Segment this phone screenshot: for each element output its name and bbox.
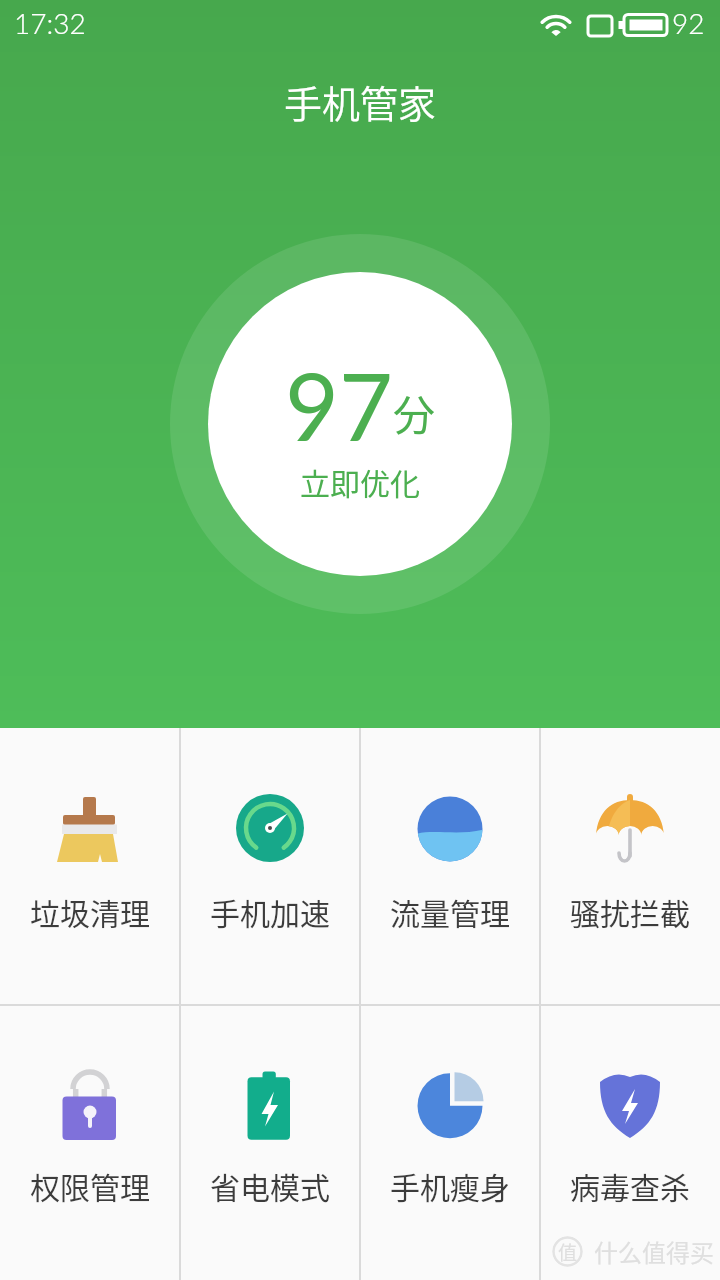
button[interactable]: 垃圾清理 <box>0 728 180 1006</box>
staticText: 92 <box>672 6 705 40</box>
staticText: 流量管理 <box>390 890 510 933</box>
staticText: 垃圾清理 <box>30 890 150 933</box>
staticText: 值 <box>558 1238 578 1266</box>
staticText: 省电模式 <box>210 1164 330 1207</box>
staticText: 手机加速 <box>210 890 330 933</box>
button[interactable]: 手机瘦身 <box>360 1006 540 1280</box>
staticText: 立即优化 <box>300 460 420 503</box>
staticText: 手机管家 <box>284 74 437 129</box>
button[interactable]: 手机加速 <box>180 728 360 1006</box>
staticText: 病毒查杀 <box>570 1164 690 1207</box>
button[interactable]: 病毒查杀 <box>540 1006 720 1280</box>
staticText: 骚扰拦截 <box>570 890 690 933</box>
button[interactable]: 骚扰拦截 <box>540 728 720 1006</box>
staticText: 17:32 <box>14 6 86 40</box>
staticText: 分 <box>393 382 436 443</box>
button[interactable]: 省电模式 <box>180 1006 360 1280</box>
staticText: 97 <box>285 349 393 461</box>
button[interactable]: 流量管理 <box>360 728 540 1006</box>
button[interactable]: 97 <box>208 272 512 576</box>
staticText: 手机瘦身 <box>390 1164 510 1207</box>
button[interactable]: 权限管理 <box>0 1006 180 1280</box>
staticText: 什么值得买 <box>594 1234 714 1269</box>
staticText: 权限管理 <box>30 1164 150 1207</box>
